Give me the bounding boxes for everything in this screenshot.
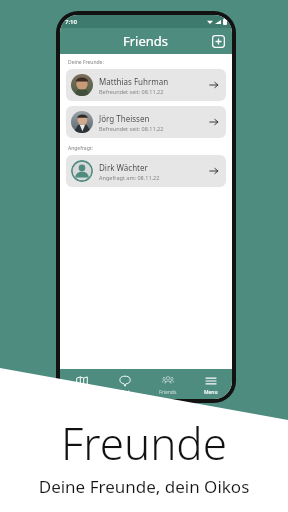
button[interactable]: Karte bbox=[60, 369, 103, 399]
staticText: Jörg Theissen bbox=[99, 113, 150, 124]
button[interactable]: Add friend bbox=[210, 33, 226, 49]
button[interactable]: Chat bbox=[103, 369, 146, 399]
staticText: Friends bbox=[123, 32, 169, 50]
staticText: Deine Freunde, dein Oikos bbox=[0, 475, 288, 498]
staticText: Friends bbox=[159, 389, 177, 396]
button[interactable]: Dirk Wächter bbox=[66, 155, 226, 187]
button[interactable]: Menu bbox=[189, 369, 232, 399]
other: Open bbox=[207, 164, 221, 178]
staticText: Deine Freunde: bbox=[68, 59, 104, 66]
other: Open bbox=[207, 115, 221, 129]
staticText: Befreundet seit: 08.11.22 bbox=[99, 88, 164, 95]
staticText: Angefragt am: 08.11.22 bbox=[99, 174, 160, 181]
other: Open bbox=[207, 78, 221, 92]
staticText: Befreundet seit: 08.11.22 bbox=[99, 125, 164, 132]
staticText: Dirk Wächter bbox=[99, 162, 148, 173]
staticText: Matthias Fuhrman bbox=[99, 76, 169, 87]
staticText: Angefragt: bbox=[68, 145, 93, 152]
button[interactable]: Jörg Theissen bbox=[66, 106, 226, 138]
button[interactable]: Matthias Fuhrman bbox=[66, 69, 226, 101]
staticText: Freunde bbox=[0, 413, 288, 473]
staticText: Chat bbox=[119, 389, 130, 396]
staticText: 7:10 bbox=[65, 18, 77, 26]
staticText: Menu bbox=[204, 389, 218, 396]
button[interactable]: Friends bbox=[146, 369, 189, 399]
